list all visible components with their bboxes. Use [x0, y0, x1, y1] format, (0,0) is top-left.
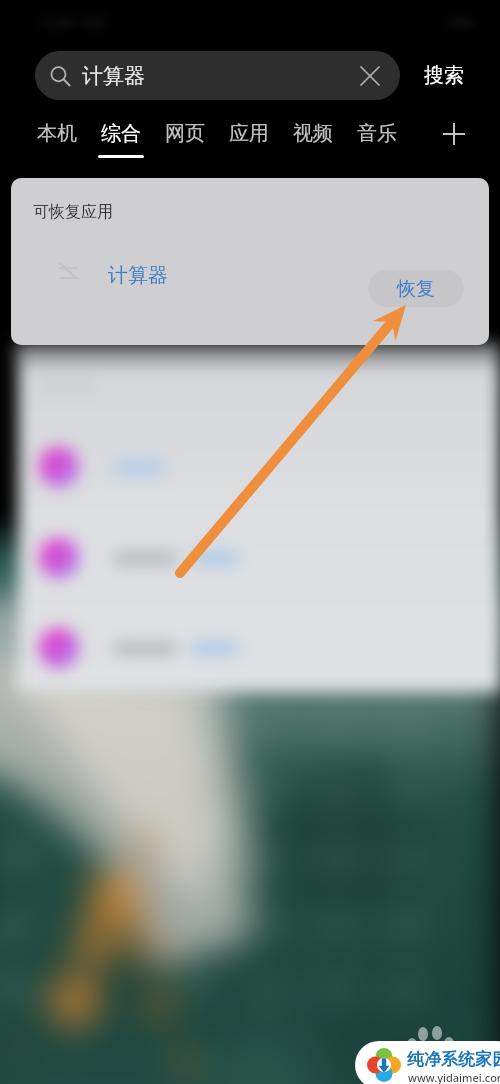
button[interactable]: 搜索 — [404, 51, 484, 100]
staticText: 纯净系统家园 — [407, 1049, 500, 1070]
staticText: 视频 — [293, 121, 333, 146]
staticText: 计算器 — [82, 63, 145, 89]
button[interactable]: 计算器 — [35, 51, 400, 100]
staticText: 恢复 — [397, 277, 435, 301]
button[interactable]: 音乐 — [345, 107, 409, 165]
staticText: 网页 — [165, 121, 205, 146]
staticText: 搜索 — [424, 63, 464, 88]
button[interactable]: 计算器 — [96, 258, 180, 292]
staticText: 可恢复应用 — [33, 202, 113, 222]
button[interactable]: Add tab — [429, 109, 479, 159]
staticText: 应用 — [229, 121, 269, 146]
staticText: 计算器 — [108, 263, 168, 288]
button[interactable]: 综合 — [89, 107, 153, 165]
button[interactable]: 网页 — [153, 107, 217, 165]
button[interactable]: 视频 — [281, 107, 345, 165]
staticText: 本机 — [37, 121, 77, 146]
staticText: 综合 — [101, 121, 141, 146]
button[interactable]: Clear search — [349, 55, 391, 97]
button[interactable]: 恢复 — [368, 270, 464, 307]
button[interactable]: 本机 — [25, 107, 89, 165]
button[interactable]: 应用 — [217, 107, 281, 165]
staticText: www.yidaimei.com — [408, 1070, 500, 1084]
staticText: 音乐 — [357, 121, 397, 146]
